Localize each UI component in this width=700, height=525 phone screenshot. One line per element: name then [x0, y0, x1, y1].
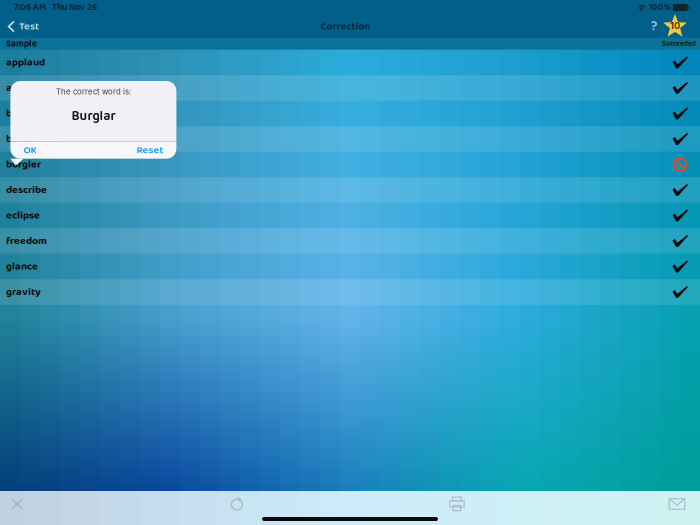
button[interactable]: eclipse [0, 203, 700, 228]
button[interactable]: Help [646, 15, 662, 38]
button[interactable]: Close [0, 491, 34, 517]
staticText: glance [6, 258, 38, 275]
button[interactable]: baggage [0, 101, 700, 126]
staticText: assist [6, 79, 34, 97]
button[interactable]: applaud [0, 50, 700, 75]
staticText: OK [23, 142, 36, 159]
staticText: burgler [6, 156, 41, 173]
staticText: describe [6, 181, 47, 199]
staticText: Sample [6, 36, 37, 51]
button[interactable]: Print [440, 491, 474, 517]
staticText: 7:06 AM [14, 0, 46, 15]
staticText: eclipse [6, 207, 40, 224]
staticText: bargain [6, 130, 43, 148]
staticText: applaud [6, 54, 45, 71]
button[interactable]: describe [0, 177, 700, 203]
staticText: ? [651, 16, 657, 37]
staticText: The correct word is: [56, 87, 131, 96]
button[interactable]: gravity [0, 279, 700, 305]
button[interactable]: Reset [136, 142, 176, 159]
staticText: 10 [670, 20, 680, 31]
staticText: Reset [136, 142, 163, 159]
staticText: Test [19, 18, 39, 35]
button[interactable]: freedom [0, 228, 700, 254]
staticText: baggage [6, 105, 48, 122]
button[interactable]: Test [6, 15, 45, 38]
staticText: freedom [6, 232, 47, 250]
button[interactable]: assist [0, 75, 700, 101]
button[interactable]: Mail [660, 491, 694, 517]
staticText: Burglar [71, 106, 115, 127]
staticText: Correction [320, 18, 370, 35]
button[interactable]: bargain [0, 126, 700, 152]
button[interactable]: Retry [220, 491, 254, 517]
staticText: Thu Nov 26 [46, 0, 97, 15]
button[interactable]: OK [10, 142, 36, 159]
staticText: Succeeded [662, 38, 696, 49]
button[interactable]: burgler [0, 152, 700, 177]
staticText: gravity [6, 283, 41, 301]
staticText: 100% [647, 0, 673, 15]
button[interactable]: Score: 10, Succeeded [662, 15, 688, 38]
button[interactable]: glance [0, 254, 700, 279]
